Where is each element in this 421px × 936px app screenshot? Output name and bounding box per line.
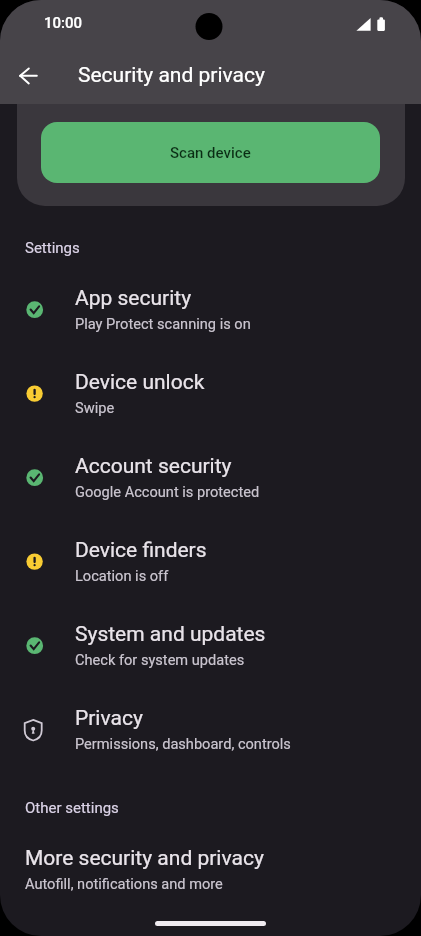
button[interactable]: System and updates (0, 603, 421, 687)
staticText: Device finders (75, 538, 207, 563)
button[interactable]: Device finders (0, 519, 421, 603)
button[interactable]: Scan device (41, 122, 380, 183)
staticText: Permissions, dashboard, controls (75, 735, 291, 752)
button[interactable]: Account security (0, 435, 421, 519)
staticText: Privacy (75, 706, 143, 731)
staticText: Settings (25, 239, 80, 257)
button[interactable]: Back (8, 56, 48, 96)
staticText: More security and privacy (25, 846, 264, 871)
button[interactable]: Privacy (0, 687, 421, 771)
staticText: System and updates (75, 622, 266, 647)
button[interactable]: Device unlock (0, 351, 421, 435)
staticText: 10:00 (44, 14, 83, 32)
staticText: Scan device (170, 144, 251, 162)
staticText: Google Account is protected (75, 483, 260, 500)
staticText: App security (75, 286, 192, 311)
staticText: Other settings (25, 799, 119, 817)
button[interactable]: App security (0, 267, 421, 351)
staticText: Location is off (75, 567, 169, 584)
staticText: Check for system updates (75, 651, 245, 668)
staticText: Account security (75, 454, 232, 479)
staticText: Swipe (75, 399, 115, 416)
button[interactable]: More security and privacy (0, 829, 421, 901)
staticText: Device unlock (75, 370, 205, 395)
staticText: Play Protect scanning is on (75, 315, 251, 332)
staticText: Security and privacy (78, 63, 265, 88)
staticText: Autofill, notifications and more (25, 875, 223, 892)
